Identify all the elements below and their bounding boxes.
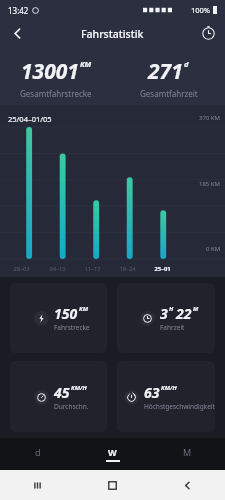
staticText: Fahrzeit xyxy=(160,323,185,332)
staticText: 3 xyxy=(160,304,168,323)
staticText: 25–01 xyxy=(154,265,171,273)
button[interactable]: 150 xyxy=(10,283,107,353)
staticText: M xyxy=(193,305,199,313)
button[interactable]: d xyxy=(0,438,75,470)
staticText: 04–10 xyxy=(49,265,66,273)
staticText: 185 KM xyxy=(199,180,221,188)
button[interactable]: 3 xyxy=(117,283,215,353)
staticText: KM/H xyxy=(71,384,87,392)
button[interactable]: 45 xyxy=(10,361,107,432)
staticText: 13:42 xyxy=(8,5,29,16)
staticText: 13001 xyxy=(21,57,79,86)
staticText: 45 xyxy=(54,383,70,402)
staticText: 100% xyxy=(191,5,211,15)
staticText: 11–17 xyxy=(84,265,101,273)
button[interactable]: Back xyxy=(0,20,34,47)
staticText: 18–24 xyxy=(119,265,136,273)
staticText: 0 KM xyxy=(206,245,221,253)
staticText: 63 xyxy=(144,383,160,402)
button[interactable]: M xyxy=(150,438,225,470)
staticText: H xyxy=(169,305,174,313)
staticText: 28–03 xyxy=(13,265,30,273)
staticText: 22 xyxy=(176,304,192,323)
staticText: W xyxy=(108,446,117,458)
staticText: d xyxy=(35,446,41,458)
staticText: Fahrstrecke xyxy=(54,323,90,332)
staticText: d xyxy=(184,59,189,69)
staticText: Höchstgeschwindigkeit xyxy=(144,402,215,411)
staticText: M xyxy=(183,446,192,458)
button[interactable]: Home xyxy=(75,470,150,500)
staticText: KM xyxy=(80,59,92,69)
button[interactable]: Recents xyxy=(0,470,75,500)
staticText: 370 KM xyxy=(199,114,221,122)
staticText: Gesamtfahrstrecke xyxy=(20,88,92,99)
button[interactable]: Timer xyxy=(191,20,225,47)
staticText: KM xyxy=(79,305,88,313)
staticText: 150 xyxy=(54,304,78,323)
button[interactable]: W xyxy=(75,438,150,470)
staticText: KM/H xyxy=(161,384,177,392)
button[interactable]: Back xyxy=(150,470,225,500)
staticText: Fahrstatistik xyxy=(81,27,144,41)
staticText: 25/04–01/05 xyxy=(8,114,52,124)
staticText: 271 xyxy=(148,57,183,86)
staticText: Gesamtfahrzeit xyxy=(140,88,198,99)
button[interactable]: 63 xyxy=(117,361,215,432)
staticText: Durchschn. xyxy=(54,402,89,411)
